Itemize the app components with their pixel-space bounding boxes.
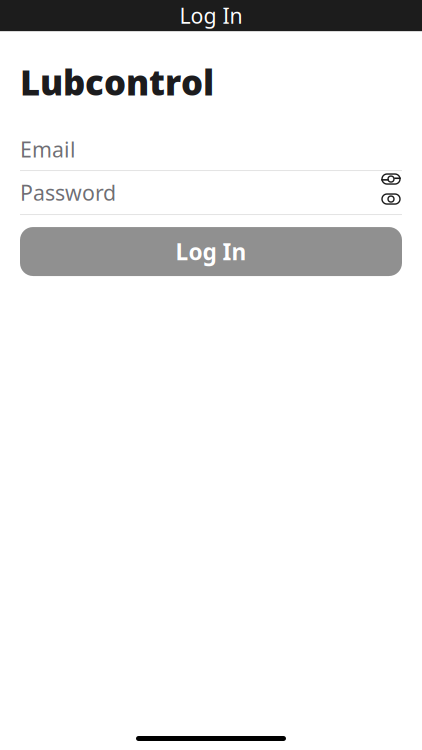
staticText: Log In [175,236,246,267]
button[interactable]: Log In [20,227,402,276]
staticText: Password [20,178,116,207]
button[interactable]: Show password [380,192,402,206]
staticText: Email [20,135,76,163]
staticText: Lubcontrol [20,59,214,105]
staticText: Log In [179,1,242,30]
button[interactable]: Hide password [380,172,402,186]
